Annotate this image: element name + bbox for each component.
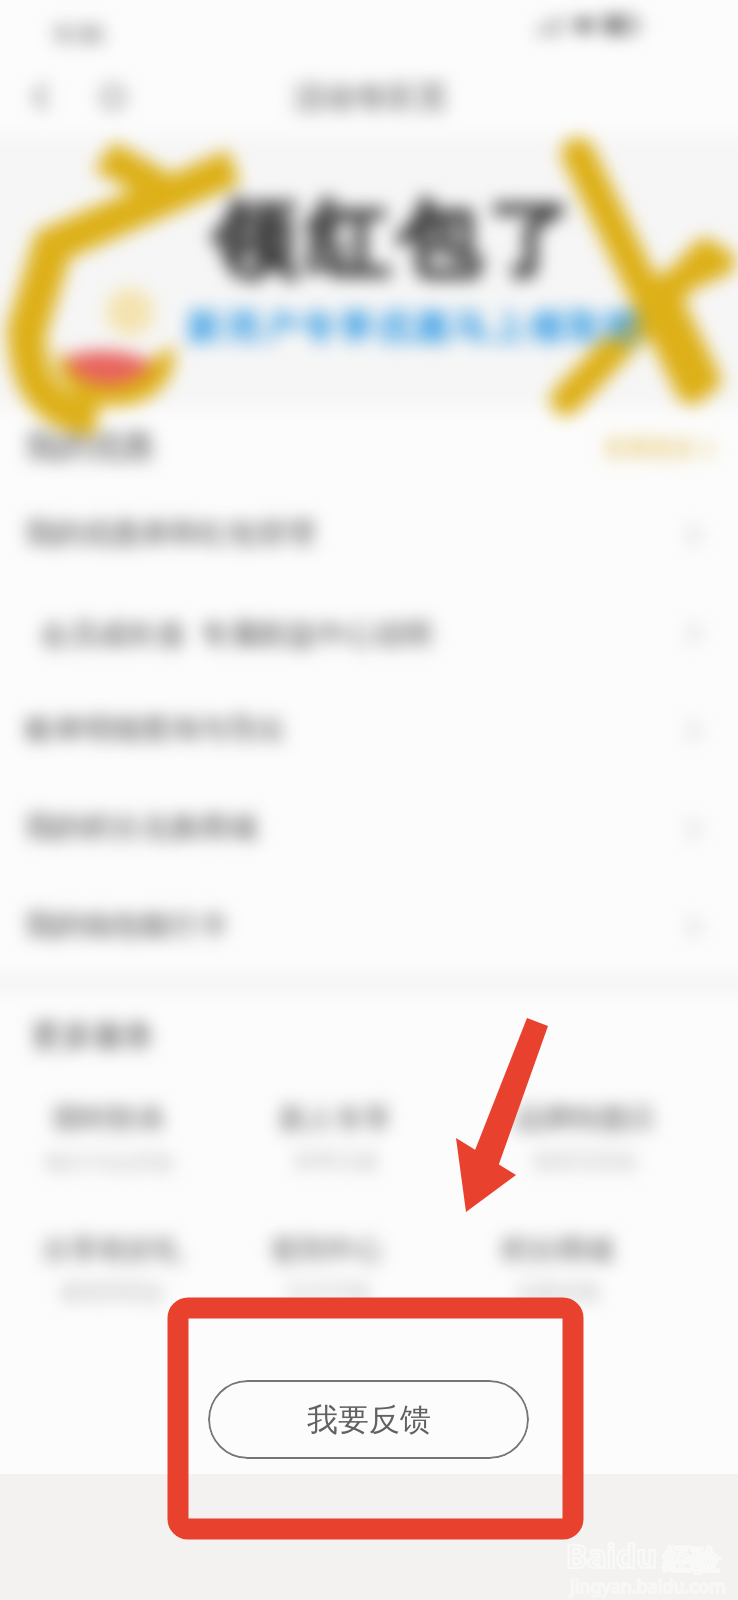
- staticText: 品牌特惠日: [515, 1101, 655, 1136]
- staticText: 积分商城: [501, 1232, 613, 1267]
- button[interactable]: 我的优惠券和红包管理: [0, 486, 738, 584]
- button[interactable]: 品牌特惠日: [485, 1093, 685, 1197]
- staticText: 我的积分兑换商城: [25, 809, 257, 846]
- button[interactable]: 限时秒杀: [10, 1093, 210, 1197]
- button[interactable]: 我的钱包银行卡: [0, 878, 738, 976]
- staticText: Baidu: [566, 1534, 658, 1578]
- staticText: 每日10点开抢: [45, 1148, 175, 1177]
- button[interactable]: 签到中心: [227, 1224, 427, 1328]
- staticText: 查看更多: [604, 434, 696, 463]
- staticText: 天天可领: [285, 1279, 369, 1305]
- staticText: 新人专享: [279, 1101, 391, 1136]
- staticText: 活动专区页: [293, 78, 448, 117]
- staticText: 限时秒杀: [54, 1101, 166, 1136]
- button[interactable]: 账单明细查询与导出: [0, 682, 738, 780]
- staticText: 会员成长值 专属权益中心说明: [40, 613, 433, 653]
- button[interactable]: 会员成长值 专属权益中心说明: [0, 584, 738, 682]
- button[interactable]: 新人专享: [235, 1093, 435, 1197]
- staticText: 我的优惠: [26, 426, 154, 466]
- staticText: 9:36: [54, 16, 104, 50]
- staticText: 分享有好礼: [42, 1232, 182, 1267]
- staticText: 账单明细查询与导出: [25, 711, 286, 748]
- staticText: 更多服务: [31, 1016, 155, 1055]
- staticText: 我要反馈: [307, 1400, 431, 1439]
- staticText: 我的钱包银行卡: [25, 907, 228, 944]
- button[interactable]: 积分商城: [457, 1224, 657, 1328]
- staticText: 领红包了: [208, 188, 576, 294]
- button[interactable]: 查看更多: [604, 434, 714, 463]
- button[interactable]: 我的积分兑换商城: [0, 780, 738, 878]
- button[interactable]: 分享有好礼: [12, 1224, 212, 1328]
- staticText: 我的优惠券和红包管理: [25, 515, 315, 552]
- button[interactable]: Back: [16, 72, 66, 122]
- staticText: 签到中心: [271, 1232, 383, 1267]
- staticText: 新用户专享优惠马上领取吧: [185, 306, 641, 349]
- staticText: 邀请得现金: [60, 1279, 165, 1305]
- staticText: 兑换好物: [515, 1279, 599, 1305]
- staticText: 首单立减: [293, 1148, 377, 1174]
- button[interactable]: 我要反馈: [208, 1380, 529, 1459]
- button[interactable]: More options: [88, 72, 138, 122]
